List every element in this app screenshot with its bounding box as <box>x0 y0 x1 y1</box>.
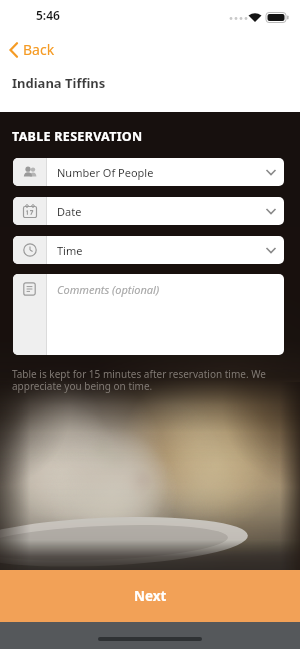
button[interactable]: Comments (optional) <box>13 274 284 355</box>
staticText: Comments (optional) <box>57 282 160 297</box>
button[interactable]: Time <box>13 236 284 264</box>
staticText: TABLE RESERVATION <box>12 128 143 145</box>
staticText: Table is kept for 15 minutes after reser… <box>12 367 266 393</box>
staticText: Next <box>134 587 167 605</box>
button[interactable]: Next <box>0 570 300 622</box>
button[interactable]: Number Of People <box>13 158 284 186</box>
button[interactable]: Back <box>6 38 57 61</box>
staticText: Back <box>23 40 55 59</box>
button[interactable]: Date <box>13 197 284 225</box>
staticText: 5:46 <box>36 7 60 23</box>
staticText: Time <box>57 243 272 258</box>
staticText: Indiana Tiffins <box>12 74 106 92</box>
staticText: Date <box>57 204 272 219</box>
staticText: Number Of People <box>57 165 272 180</box>
